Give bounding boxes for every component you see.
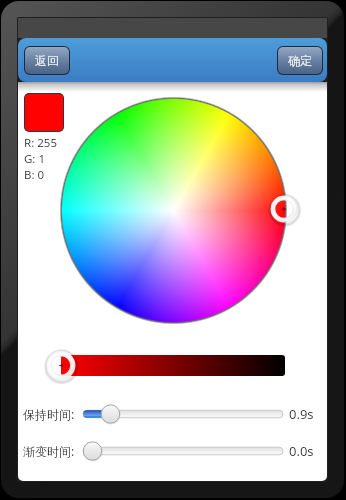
button[interactable]: 确定 bbox=[278, 47, 322, 74]
button[interactable] bbox=[25, 94, 63, 131]
staticText: 确定 bbox=[288, 53, 312, 68]
staticText: 0.0s bbox=[289, 442, 314, 460]
button[interactable] bbox=[18, 82, 327, 481]
staticText: B: 0 bbox=[24, 167, 45, 183]
staticText: G: 1 bbox=[24, 151, 46, 167]
button[interactable] bbox=[18, 82, 327, 481]
button[interactable]: 返回 bbox=[25, 47, 69, 74]
staticText: 保持时间: bbox=[23, 406, 75, 422]
staticText: 渐变时间: bbox=[23, 443, 75, 459]
staticText: R: 255 bbox=[24, 135, 57, 151]
button[interactable] bbox=[18, 82, 327, 481]
staticText: 0.9s bbox=[289, 405, 314, 423]
staticText: 返回 bbox=[35, 53, 59, 68]
